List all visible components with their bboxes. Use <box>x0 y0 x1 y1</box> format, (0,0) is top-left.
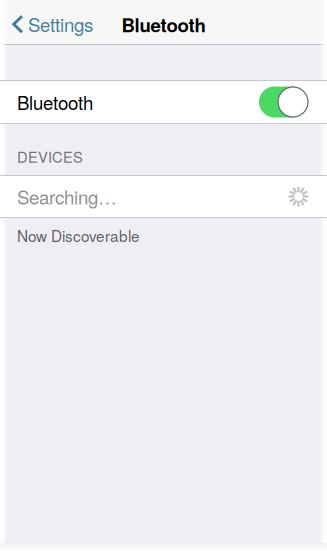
staticText: Now Discoverable <box>17 224 140 246</box>
staticText: Settings <box>28 11 93 37</box>
staticText: Searching… <box>17 183 117 210</box>
staticText: Bluetooth <box>17 89 93 115</box>
staticText: Bluetooth <box>121 11 205 38</box>
staticText: DEVICES <box>17 146 83 167</box>
button[interactable]: Bluetooth <box>0 81 327 123</box>
button[interactable]: Settings <box>0 0 103 44</box>
